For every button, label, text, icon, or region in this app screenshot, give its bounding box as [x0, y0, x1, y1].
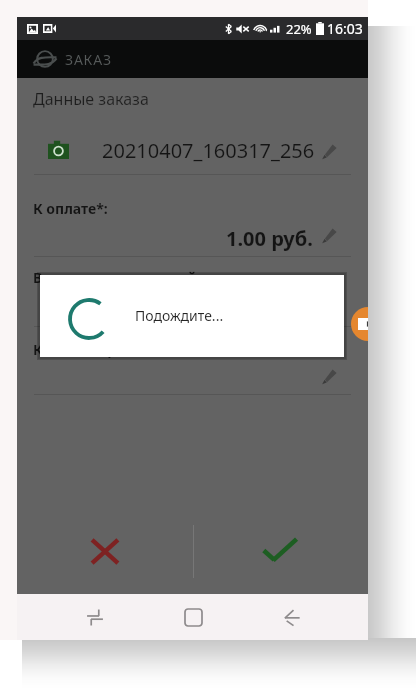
button[interactable]: Recents [67, 594, 122, 640]
staticText: 20210407_160317_256 [102, 137, 315, 164]
button[interactable]: Edit [319, 142, 339, 162]
button[interactable]: Edit [319, 367, 339, 387]
staticText: 22% [286, 20, 312, 38]
button[interactable]: Home [165, 594, 221, 640]
button[interactable]: Edit [319, 226, 339, 246]
button[interactable]: Video [351, 307, 368, 341]
button[interactable]: Back [263, 594, 318, 640]
staticText: Введите комментарий: [33, 268, 201, 287]
staticText: Данные заказа [33, 88, 149, 110]
staticText: 16:03 [327, 19, 363, 38]
staticText: Комментарий: [33, 340, 140, 359]
button[interactable]: Photo [48, 140, 69, 159]
button[interactable]: Confirm [247, 517, 313, 583]
button[interactable]: Cancel [73, 520, 136, 583]
staticText: Подождите... [135, 306, 224, 325]
staticText: К оплате*: [33, 199, 108, 218]
staticText: 1.00 руб. [226, 225, 313, 252]
staticText: ЗАКАЗ [65, 50, 112, 69]
button[interactable]: Menu [31, 45, 59, 73]
